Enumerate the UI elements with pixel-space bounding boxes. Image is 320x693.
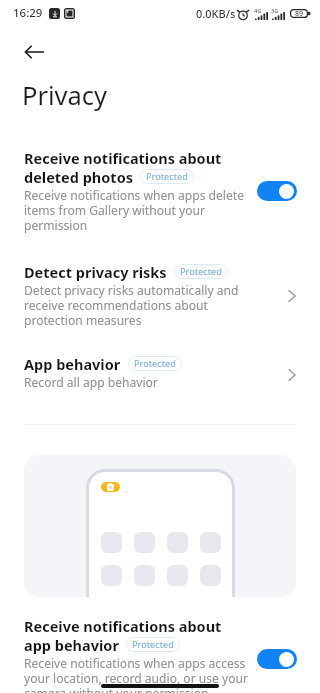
staticText: 16:29 (13, 5, 43, 21)
staticText: Privacy (22, 78, 108, 113)
staticText: 89 (295, 9, 304, 18)
staticText: Protected (180, 265, 222, 278)
staticText: 0.0KB/s (196, 6, 236, 21)
staticText: deleted photos (24, 167, 133, 186)
button[interactable]: App behavior (0, 354, 320, 390)
staticText: 3G (271, 7, 279, 14)
staticText: 4G (254, 7, 262, 14)
staticText: Receive notifications when apps access y… (24, 655, 249, 693)
staticText: Record all app behavior (24, 374, 158, 390)
staticText: app behavior (24, 635, 119, 654)
staticText: Protected (132, 638, 174, 651)
staticText: Detect privacy risks automatically and r… (24, 282, 244, 329)
staticText: App behavior (24, 354, 121, 373)
staticText: Detect privacy risks (24, 262, 167, 281)
button[interactable]: Toggle (257, 181, 297, 201)
button[interactable]: Receive notifications about (0, 148, 320, 234)
button[interactable]: Back (16, 34, 52, 70)
staticText: Receive notifications about (24, 148, 222, 167)
staticText: Protected (146, 170, 188, 183)
button[interactable]: Detect privacy risks (0, 262, 320, 329)
button[interactable]: Receive notifications about (0, 616, 320, 693)
button[interactable]: Toggle (257, 649, 297, 669)
staticText: Protected (134, 357, 176, 370)
staticText: Receive notifications about (24, 616, 222, 635)
staticText: Receive notifications when apps delete i… (24, 187, 249, 234)
